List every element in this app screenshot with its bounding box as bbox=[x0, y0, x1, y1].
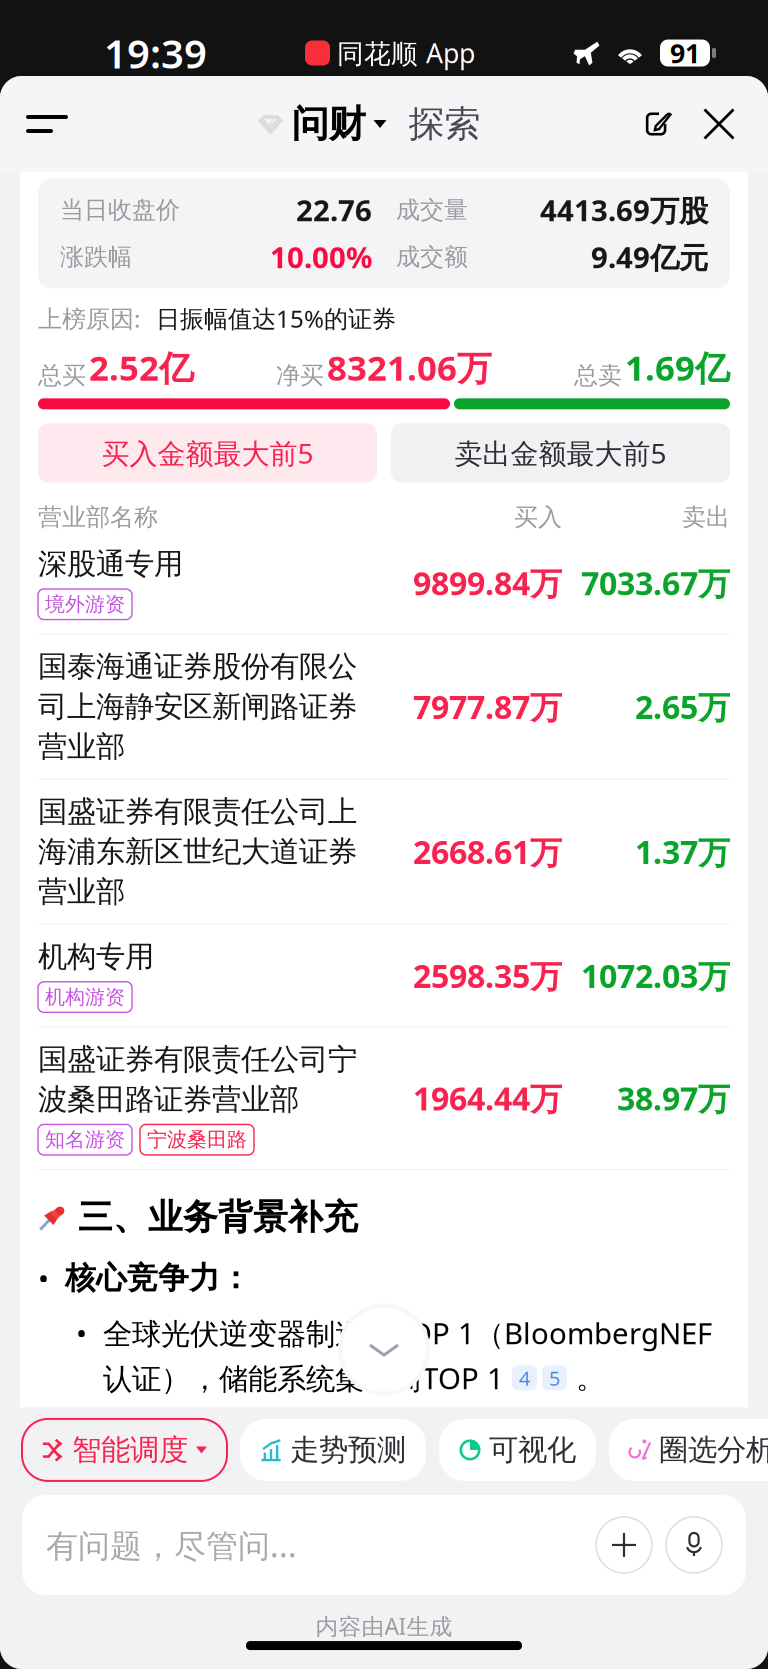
staticText: 国泰海通证券股份有限公 bbox=[38, 649, 357, 685]
staticText: 智能调度 bbox=[72, 1432, 188, 1468]
staticText: 走势预测 bbox=[290, 1432, 406, 1468]
button[interactable]: Menu bbox=[0, 95, 106, 153]
staticText: 91 bbox=[670, 35, 700, 71]
button[interactable]: Expand bbox=[338, 1303, 430, 1395]
staticText: 海浦东新区世纪大道证券 bbox=[38, 834, 357, 870]
staticText: 1072.03万 bbox=[581, 954, 730, 997]
staticText: 内容由AI生成 bbox=[315, 1611, 452, 1641]
staticText: 日振幅值达15%的证券 bbox=[156, 302, 396, 334]
staticText: 。 bbox=[567, 1360, 605, 1396]
staticText: 1.69亿 bbox=[625, 344, 730, 390]
staticText: 核心竞争力： bbox=[65, 1259, 251, 1297]
staticText: 可视化 bbox=[489, 1432, 576, 1468]
staticText: 同花顺 App bbox=[337, 35, 475, 71]
staticText: 4413.69万股 bbox=[540, 190, 708, 229]
button[interactable]: Compose bbox=[632, 97, 686, 151]
staticText: 5 bbox=[549, 1365, 560, 1391]
staticText: 当日收盘价 bbox=[60, 195, 180, 225]
staticText: 9899.84万 bbox=[413, 561, 562, 604]
staticText: 波桑田路证券营业部 bbox=[38, 1081, 299, 1117]
staticText: 机构游资 bbox=[45, 985, 125, 1009]
staticText: 1.37万 bbox=[635, 830, 730, 873]
staticText: 知名游资 bbox=[45, 1127, 125, 1152]
staticText: 净买 bbox=[276, 361, 324, 390]
button[interactable]: 圈选分析 bbox=[609, 1419, 768, 1481]
staticText: 总买 bbox=[38, 361, 86, 390]
staticText: 全球光伏逆变器制造商TOP 1（BloombergNEF bbox=[103, 1313, 712, 1352]
staticText: 认证），储能系统集成商TOP 1 bbox=[103, 1358, 512, 1397]
button[interactable]: 可视化 bbox=[439, 1419, 596, 1481]
button[interactable]: 智能调度 bbox=[22, 1419, 227, 1481]
staticText: 国盛证券有限责任公司上 bbox=[38, 794, 357, 830]
staticText: 10.00% bbox=[270, 237, 372, 276]
button[interactable]: 卖出金额最大前5 bbox=[391, 423, 730, 482]
staticText: 2598.35万 bbox=[413, 954, 562, 997]
staticText: 4 bbox=[519, 1365, 530, 1391]
staticText: 卖出 bbox=[682, 502, 730, 532]
staticText: 机构专用 bbox=[38, 939, 154, 975]
staticText: 营业部 bbox=[38, 874, 125, 910]
staticText: 买入金额最大前5 bbox=[101, 434, 313, 471]
staticText: 38.97万 bbox=[617, 1077, 730, 1119]
button[interactable]: Close bbox=[686, 97, 768, 151]
staticText: 7977.87万 bbox=[413, 685, 562, 728]
staticText: 有问题，尽管问... bbox=[46, 1524, 297, 1566]
staticText: 三、业务背景补充 bbox=[78, 1196, 358, 1239]
button[interactable]: 问财 bbox=[257, 101, 386, 147]
staticText: 成交量 bbox=[396, 195, 468, 225]
staticText: 总卖 bbox=[574, 361, 622, 390]
staticText: 买入 bbox=[514, 502, 562, 532]
staticText: 营业部 bbox=[38, 729, 125, 765]
staticText: • bbox=[76, 1313, 87, 1352]
staticText: 成交额 bbox=[396, 242, 468, 272]
staticText: 宁波桑田路 bbox=[147, 1127, 247, 1152]
button[interactable]: 买入金额最大前5 bbox=[38, 423, 377, 482]
staticText: 22.76 bbox=[296, 190, 372, 229]
staticText: 司上海静安区新闸路证券 bbox=[38, 689, 357, 725]
button[interactable]: 走势预测 bbox=[240, 1419, 426, 1481]
staticText: 1964.44万 bbox=[413, 1077, 562, 1119]
staticText: 深股通专用 bbox=[38, 546, 183, 582]
staticText: 卖出金额最大前5 bbox=[454, 434, 666, 471]
staticText: 7033.67万 bbox=[581, 561, 730, 604]
button[interactable]: 有问题，尽管问... bbox=[22, 1495, 746, 1595]
staticText: 2668.61万 bbox=[413, 830, 562, 873]
staticText: • bbox=[38, 1258, 49, 1297]
staticText: 探索 bbox=[408, 102, 480, 146]
staticText: 国盛证券有限责任公司宁 bbox=[38, 1041, 357, 1077]
staticText: 8321.06万 bbox=[327, 344, 492, 390]
staticText: 圈选分析 bbox=[659, 1432, 768, 1468]
staticText: 问财 bbox=[291, 101, 365, 147]
staticText: 境外游资 bbox=[45, 592, 125, 617]
staticText: 营业部名称 bbox=[38, 502, 158, 532]
button[interactable]: 探索 bbox=[386, 102, 480, 146]
staticText: 2.52亿 bbox=[89, 344, 194, 390]
staticText: 涨跌幅 bbox=[60, 242, 132, 272]
staticText: 19:39 bbox=[104, 26, 207, 79]
staticText: 9.49亿元 bbox=[591, 237, 708, 276]
staticText: 上榜原因: bbox=[38, 302, 140, 334]
staticText: 2.65万 bbox=[635, 685, 730, 728]
